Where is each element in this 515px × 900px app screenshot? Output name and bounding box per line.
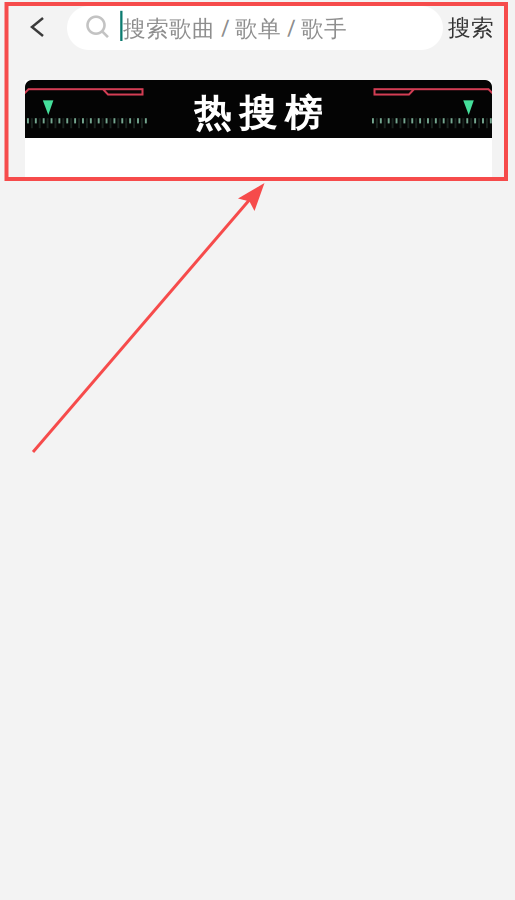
button[interactable]: 搜索 xyxy=(439,6,503,50)
staticText: 热搜榜 xyxy=(194,91,321,137)
button[interactable]: Back xyxy=(15,5,59,49)
button[interactable]: 搜索歌曲 / 歌单 / 歌手 xyxy=(67,6,443,50)
staticText: 搜索歌曲 / 歌单 / 歌手 xyxy=(123,13,347,43)
staticText: 搜索 xyxy=(448,14,494,42)
